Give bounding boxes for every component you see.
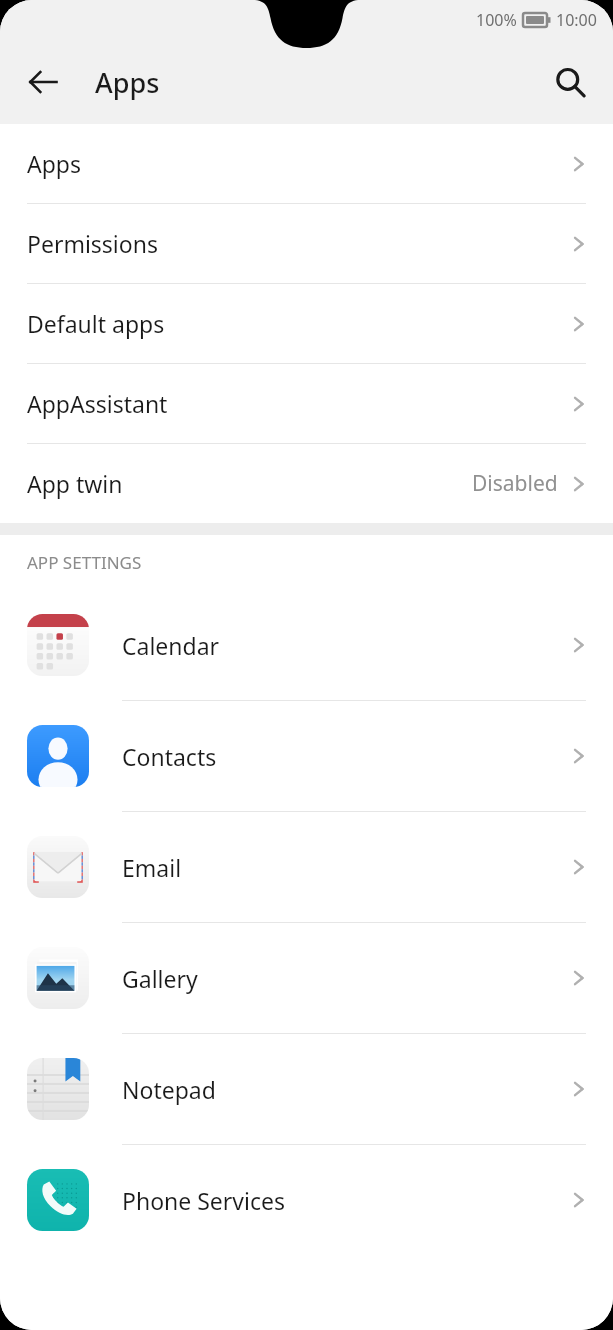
button[interactable]: Search [541, 53, 599, 111]
button[interactable]: Default apps [0, 284, 613, 364]
button[interactable]: Contacts [0, 701, 613, 812]
button[interactable]: Notepad [0, 1034, 613, 1145]
button[interactable]: Phone Services [0, 1145, 613, 1255]
staticText: Default apps [27, 308, 165, 339]
button[interactable]: App twin [0, 444, 613, 523]
staticText: Email [122, 852, 182, 883]
staticText: App twin [27, 468, 123, 499]
staticText: Notepad [122, 1074, 216, 1105]
button[interactable]: Calendar [0, 590, 613, 701]
staticText: Permissions [27, 228, 158, 259]
staticText: Contacts [122, 741, 217, 772]
staticText: Apps [27, 148, 82, 179]
button[interactable]: Permissions [0, 204, 613, 284]
staticText: 10:00 [556, 9, 597, 31]
staticText: APP SETTINGS [27, 551, 142, 574]
button[interactable]: Gallery [0, 923, 613, 1034]
button[interactable]: AppAssistant [0, 364, 613, 444]
staticText: Calendar [122, 630, 220, 661]
staticText: AppAssistant [27, 388, 168, 419]
staticText: Disabled [472, 469, 558, 498]
button[interactable]: Email [0, 812, 613, 923]
staticText: Apps [95, 64, 160, 101]
staticText: 100% [476, 9, 517, 31]
staticText: Gallery [122, 963, 198, 994]
button[interactable]: Back [14, 53, 72, 111]
button[interactable]: Apps [0, 124, 613, 204]
staticText: Phone Services [122, 1185, 285, 1216]
